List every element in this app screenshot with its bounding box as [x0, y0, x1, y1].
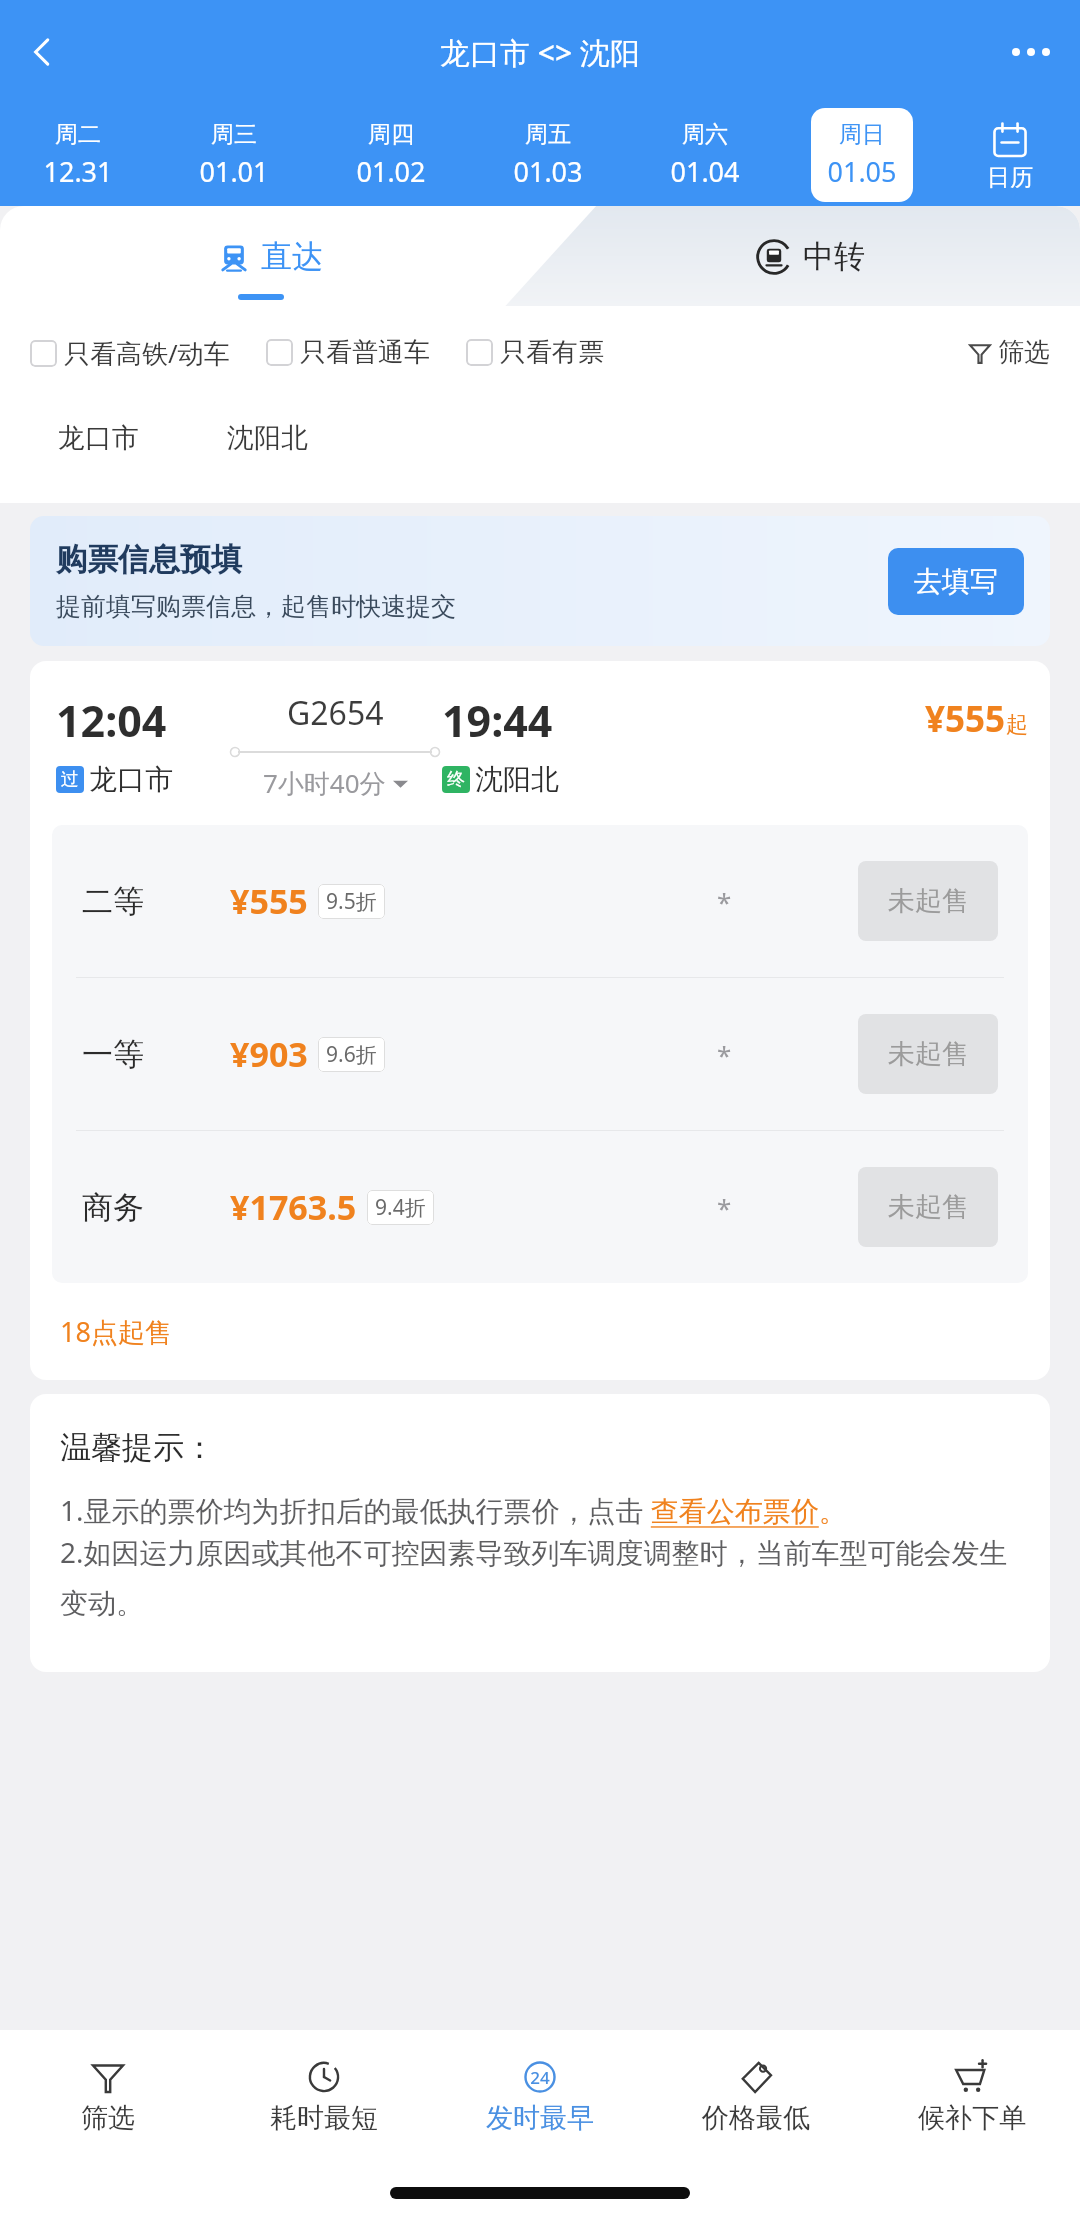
button[interactable]: 周日	[811, 108, 913, 202]
staticText: 01.04	[670, 153, 740, 190]
staticText: 01.05	[827, 153, 897, 190]
staticText: 龙口市	[89, 762, 173, 797]
staticText: 周日	[839, 120, 885, 149]
button[interactable]: 中转	[540, 206, 1080, 306]
staticText: 周五	[525, 120, 571, 149]
button[interactable]: 只看普通车	[266, 336, 430, 369]
button[interactable]: 筛选	[963, 332, 1054, 373]
staticText: 未起售	[888, 1037, 969, 1071]
staticText: 周二	[55, 120, 101, 149]
staticText: 7小时40分	[263, 765, 386, 801]
staticText: 12.31	[43, 153, 113, 190]
staticText: 19:44	[442, 691, 553, 750]
staticText: 发时最早	[486, 2101, 594, 2135]
staticText: 未起售	[888, 1190, 969, 1224]
button[interactable]: 龙口市	[22, 401, 175, 475]
button[interactable]: 筛选	[0, 2030, 216, 2160]
staticText: 周六	[682, 120, 728, 149]
button[interactable]: 未起售	[858, 1014, 998, 1094]
button[interactable]: Back	[8, 18, 76, 86]
staticText: 一等	[82, 1035, 230, 1074]
button[interactable]: 周四	[340, 108, 442, 202]
staticText: *	[717, 1037, 732, 1072]
button[interactable]: 只看有票	[466, 336, 604, 369]
staticText: 耗时最短	[270, 2101, 378, 2135]
staticText: 终	[447, 768, 465, 791]
staticText: 龙口市	[58, 421, 139, 455]
staticText: 沈阳北	[227, 421, 308, 455]
staticText: 只看有票	[500, 336, 604, 369]
staticText: 01.01	[199, 153, 269, 190]
button[interactable]: 沈阳北	[191, 401, 344, 475]
staticText: 起	[1006, 711, 1028, 739]
staticText: 去填写	[914, 564, 998, 599]
staticText: 候补下单	[918, 2101, 1026, 2135]
button[interactable]: 直达	[0, 206, 540, 306]
staticText: 中转	[803, 237, 865, 276]
staticText: 01.03	[513, 153, 583, 190]
staticText: 日历	[987, 163, 1033, 192]
staticText: 购票信息预填	[56, 540, 242, 579]
staticText: *	[717, 884, 732, 919]
button[interactable]: 候补下单	[864, 2030, 1080, 2160]
staticText: 18点起售	[60, 1313, 172, 1350]
staticText: 周三	[211, 120, 257, 149]
staticText: 2.如因运力原因或其他不可控因素导致列车调度调整时，当前车型可能会发生变动。	[60, 1533, 1024, 1622]
staticText: 只看高铁/动车	[64, 335, 230, 371]
staticText: 01.02	[356, 153, 426, 190]
staticText: ¥903	[230, 1031, 308, 1077]
staticText: 12:04	[56, 691, 167, 750]
button[interactable]: 耗时最短	[216, 2030, 432, 2160]
staticText: ¥555	[925, 695, 1006, 743]
button[interactable]: 周五	[497, 108, 599, 202]
button[interactable]: 日历	[940, 104, 1080, 206]
button[interactable]: 未起售	[858, 861, 998, 941]
staticText: 龙口市 <> 沈阳	[440, 32, 640, 73]
staticText: 价格最低	[702, 2101, 810, 2135]
staticText: 9.4折	[375, 1193, 426, 1222]
staticText: 未起售	[888, 884, 969, 918]
staticText: *	[717, 1190, 732, 1225]
button[interactable]: 未起售	[858, 1167, 998, 1247]
staticText: ¥1763.5	[230, 1184, 357, 1230]
button[interactable]: 周六	[654, 108, 756, 202]
staticText: 只看普通车	[300, 336, 430, 369]
staticText: 9.6折	[326, 1040, 377, 1069]
button[interactable]: 周三	[183, 108, 285, 202]
staticText: 周四	[368, 120, 414, 149]
button[interactable]: 商务	[52, 1131, 1028, 1283]
button[interactable]: 去填写	[888, 548, 1024, 615]
staticText: 直达	[261, 237, 323, 276]
staticText: 温馨提示：	[60, 1428, 215, 1467]
button[interactable]: 24	[432, 2030, 648, 2160]
staticText: 筛选	[81, 2101, 135, 2135]
staticText: G2654	[287, 691, 384, 735]
staticText: ¥555	[230, 878, 308, 924]
button[interactable]: 周二	[27, 108, 129, 202]
button[interactable]: 12:04	[30, 661, 1050, 1380]
staticText: 筛选	[998, 336, 1050, 369]
staticText: 提前填写购票信息，起售时快速提交	[56, 591, 456, 622]
staticText: 1.显示的票价均为折扣后的最低执行票价，点击 查看公布票价。	[60, 1491, 847, 1529]
button[interactable]: More options	[996, 17, 1066, 87]
button[interactable]: 一等	[52, 978, 1028, 1130]
staticText: 24	[530, 2066, 550, 2089]
staticText: 过	[61, 768, 79, 791]
staticText: 二等	[82, 882, 230, 921]
staticText: 商务	[82, 1188, 230, 1227]
button[interactable]: 购票信息预填	[30, 516, 1050, 646]
button[interactable]: 价格最低	[648, 2030, 864, 2160]
staticText: 9.5折	[326, 887, 377, 916]
button[interactable]: 二等	[52, 825, 1028, 977]
button[interactable]: 只看高铁/动车	[30, 335, 230, 371]
staticText: 沈阳北	[475, 762, 559, 797]
